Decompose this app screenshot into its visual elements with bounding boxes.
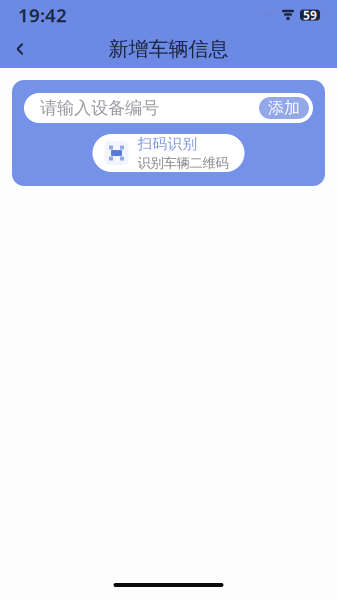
button[interactable]: 扫码识别 [92,134,244,172]
staticText: 新增车辆信息 [108,37,228,61]
staticText: 扫码识别 [137,135,197,153]
staticText: 识别车辆二维码 [137,155,228,171]
staticText: 19:42 [18,3,67,27]
button[interactable]: 返回 [0,30,40,68]
staticText: 请输入设备编号 [40,97,159,119]
staticText: 59 [303,7,317,23]
staticText: 添加 [268,98,300,118]
button[interactable]: 添加 [259,97,309,119]
